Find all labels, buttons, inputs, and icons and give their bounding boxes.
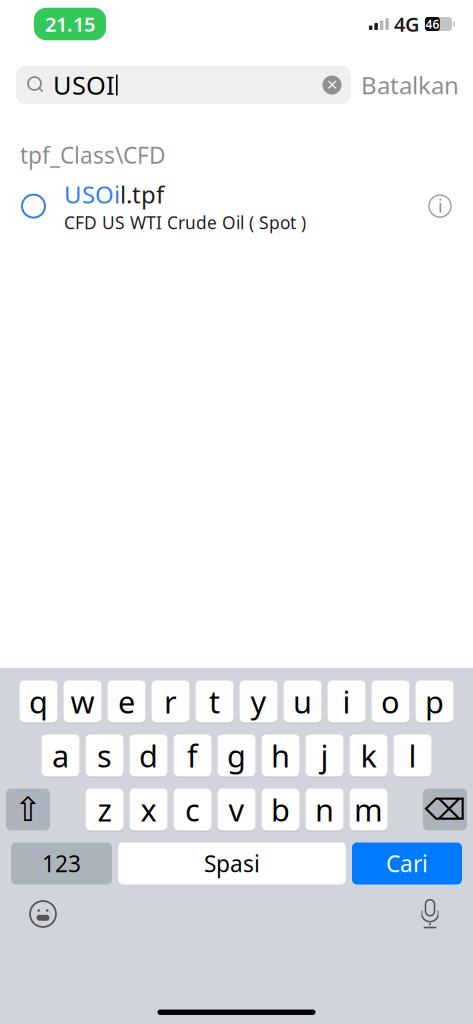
staticText: v [228,789,244,830]
button[interactable]: c [173,788,211,831]
staticText: ⇧ [14,791,42,828]
staticText: l.tpf [120,178,164,210]
staticText: Spasi [204,848,260,878]
button[interactable]: s [85,734,123,777]
button[interactable]: w [63,680,101,723]
button[interactable]: l [393,734,431,777]
staticText: b [271,789,290,830]
button[interactable]: x [129,788,167,831]
staticText: ✕ [326,77,338,93]
button[interactable]: a [41,734,79,777]
staticText: g [227,735,246,776]
staticText: k [360,735,376,776]
staticText: i [342,681,350,722]
staticText: p [425,681,444,722]
staticText: 4G [394,11,420,37]
button[interactable]: o [371,680,409,723]
staticText: r [164,681,177,722]
button[interactable]: b [261,788,299,831]
button[interactable]: p [415,680,453,723]
button[interactable]: Delete [423,788,467,831]
staticText: h [271,735,290,776]
button[interactable]: 123 [11,842,112,885]
button[interactable]: m [349,788,387,831]
button[interactable]: e [107,680,145,723]
staticText: USOi [64,178,120,210]
staticText: x [140,789,156,830]
staticText: 123 [42,848,81,878]
button[interactable]: k [349,734,387,777]
staticText: Cari [386,848,428,878]
staticText: f [187,735,198,776]
button[interactable]: n [305,788,343,831]
staticText: j [320,735,328,776]
button[interactable]: h [261,734,299,777]
staticText: c [185,789,200,830]
button[interactable]: j [305,734,343,777]
button[interactable]: v [217,788,255,831]
button[interactable]: r [151,680,189,723]
button[interactable]: USOi [0,182,473,230]
staticText: t [209,681,220,722]
staticText: u [293,681,312,722]
staticText: o [381,681,400,722]
button[interactable]: Shift [6,788,50,831]
staticText: y [250,681,266,722]
staticText: e [118,681,135,722]
button[interactable]: f [173,734,211,777]
button[interactable]: Emoji [28,899,58,929]
staticText: 46 [425,16,439,32]
button[interactable]: Cari [352,842,462,885]
staticText: n [315,789,334,830]
button[interactable]: d [129,734,167,777]
staticText: USOI [53,68,115,102]
staticText: l [408,735,416,776]
staticText: s [97,735,112,776]
button[interactable]: Batalkan [361,69,459,101]
staticText: CFD US WTI Crude Oil ( Spot ) [64,211,306,234]
button[interactable]: i [327,680,365,723]
button[interactable]: USOI [16,66,351,104]
staticText: d [139,735,158,776]
staticText: 21.15 [45,11,95,37]
staticText: m [354,789,383,830]
button[interactable]: y [239,680,277,723]
staticText: tpf_Class\CFD [20,140,166,170]
staticText: i [438,195,442,218]
button[interactable]: Dictate [415,899,445,929]
staticText: Batalkan [361,69,459,101]
staticText: q [29,681,48,722]
button[interactable]: z [85,788,123,831]
staticText: w [70,681,94,722]
staticText: a [52,735,69,776]
button[interactable]: g [217,734,255,777]
button[interactable]: q [19,680,57,723]
button[interactable]: u [283,680,321,723]
staticText: z [97,789,111,830]
button[interactable]: Spasi [118,842,346,885]
button[interactable]: t [195,680,233,723]
staticText: ⌫ [424,793,465,826]
